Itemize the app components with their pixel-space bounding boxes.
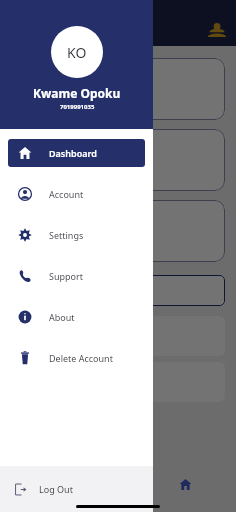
staticText: About <box>49 311 75 323</box>
staticText: Account <box>49 188 84 200</box>
button[interactable]: Home <box>118 466 236 502</box>
staticText: Log Out <box>39 483 73 495</box>
button[interactable]: Send Money <box>11 58 225 120</box>
button[interactable]: Log Out <box>0 466 153 512</box>
staticText: 7019991035 <box>60 103 95 111</box>
button[interactable]: Delete Account <box>8 344 145 372</box>
button[interactable]: Support <box>8 262 145 290</box>
button[interactable]: K <box>11 316 225 356</box>
staticText: KO <box>67 43 87 62</box>
button[interactable]: Account <box>8 180 145 208</box>
button[interactable]: Settings <box>8 221 145 249</box>
staticText: Dashboard <box>49 147 97 159</box>
button[interactable]: View Balance <box>11 275 225 306</box>
button[interactable]: C <box>11 362 225 402</box>
staticText: Settings <box>49 229 84 241</box>
staticText: Support <box>49 270 83 282</box>
staticText: Kwame Opoku <box>33 85 121 101</box>
button[interactable]: Dashboard <box>8 139 145 167</box>
button[interactable]: Pay Bill <box>11 129 225 191</box>
button[interactable]: About <box>8 303 145 331</box>
staticText: Delete Account <box>49 352 113 364</box>
button[interactable]: Make a Donation <box>11 200 225 262</box>
